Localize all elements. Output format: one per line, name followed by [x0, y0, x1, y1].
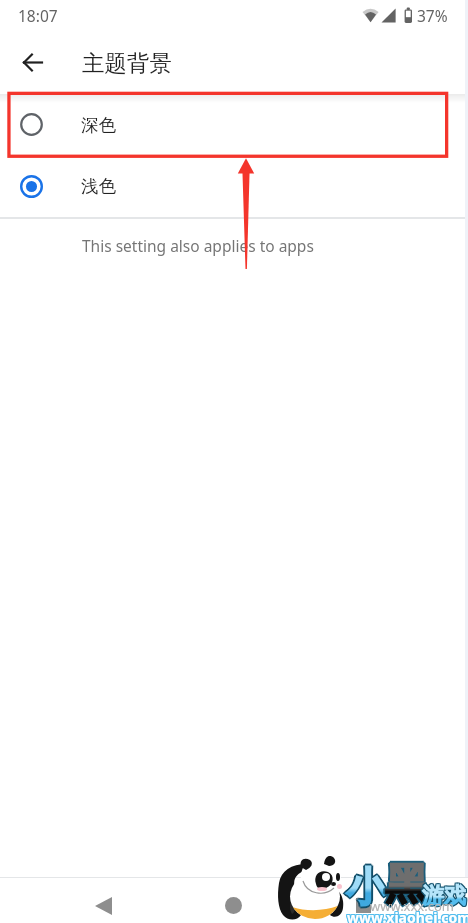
staticText: This setting also applies to apps	[82, 235, 314, 256]
staticText: 黑	[385, 860, 428, 914]
staticText: 黑	[386, 857, 429, 911]
staticText: www.xiaohei.com	[346, 907, 468, 923]
staticText: www.xiaohei.com	[347, 907, 468, 923]
staticText: 小	[348, 862, 388, 912]
staticText: 黑	[384, 859, 427, 913]
staticText: www.xiaohei.com	[346, 909, 468, 923]
staticText: 小	[346, 862, 386, 912]
staticText: 小	[345, 861, 385, 911]
staticText: www.xiaohei.com	[348, 909, 468, 923]
staticText: 小	[345, 863, 385, 913]
staticText: 黑	[385, 856, 428, 910]
staticText: 小	[346, 864, 386, 914]
staticText: 游戏	[421, 881, 465, 909]
staticText: 游戏	[423, 881, 467, 909]
staticText: 浅色	[81, 175, 116, 197]
staticText: 游戏	[423, 883, 467, 911]
staticText: 黑	[384, 857, 427, 911]
staticText: 游戏	[421, 882, 465, 910]
staticText: 游戏	[422, 882, 466, 910]
staticText: 黑	[383, 858, 426, 912]
staticText: www.xxx.com	[370, 897, 454, 915]
staticText: 游戏	[422, 883, 466, 911]
staticText: 主题背景	[82, 49, 172, 77]
staticText: 37%	[417, 5, 448, 26]
button[interactable]: 浅色	[0, 155, 468, 217]
staticText: 小	[346, 860, 386, 910]
staticText: 小	[347, 861, 387, 911]
staticText: 黑	[385, 858, 428, 912]
staticText: 小	[347, 863, 387, 913]
staticText: www.xiaohei.com	[348, 907, 468, 923]
staticText: 深色	[81, 114, 116, 136]
staticText: 游戏	[422, 881, 466, 909]
staticText: www.xiaohei.com	[347, 909, 468, 923]
staticText: 游戏	[423, 882, 467, 910]
staticText: 小	[344, 862, 384, 912]
staticText: 游戏	[421, 883, 465, 911]
staticText: www.xiaohei.com	[346, 908, 468, 923]
staticText: 18:07	[18, 5, 58, 26]
staticText: www.xiaohei.com	[348, 908, 468, 923]
button[interactable]: Back	[38, 878, 168, 923]
button[interactable]: Back	[10, 40, 54, 84]
button[interactable]: Home	[168, 878, 298, 923]
button[interactable]: Recents	[298, 878, 428, 923]
staticText: 黑	[386, 859, 429, 913]
staticText: 黑	[387, 858, 430, 912]
staticText: www.xiaohei.com	[347, 908, 468, 923]
button[interactable]: 深色	[0, 94, 468, 155]
